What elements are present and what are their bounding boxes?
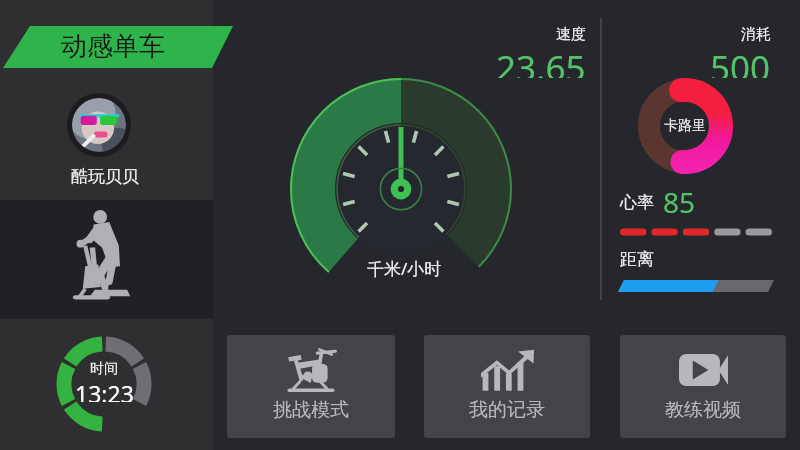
staticText: 23.65	[496, 44, 586, 78]
staticText: 千米/小时	[367, 257, 442, 280]
button[interactable]: 挑战模式	[227, 335, 395, 438]
staticText: 心率	[620, 192, 654, 213]
staticText: 卡路里	[664, 117, 706, 135]
button[interactable]	[72, 98, 126, 152]
staticText: 消耗	[741, 25, 771, 43]
staticText: 教练视频	[665, 398, 741, 422]
staticText: 速度	[556, 25, 586, 43]
staticText: 时间	[90, 360, 118, 378]
staticText: 酷玩贝贝	[71, 166, 139, 187]
staticText: 13:23	[75, 378, 134, 402]
button[interactable]: 我的记录	[424, 335, 590, 438]
button[interactable]: 动感单车	[22, 25, 203, 68]
button[interactable]: 教练视频	[620, 335, 786, 438]
staticText: 动感单车	[61, 30, 165, 63]
staticText: 距离	[620, 249, 654, 270]
staticText: 挑战模式	[273, 398, 349, 422]
staticText: 85	[663, 183, 696, 221]
staticText: 500	[710, 44, 771, 78]
staticText: 我的记录	[469, 398, 545, 422]
